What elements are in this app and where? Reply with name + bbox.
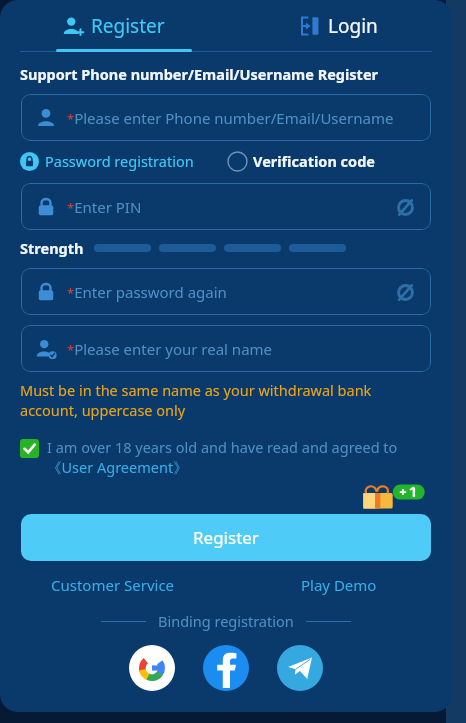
staticText: Strength [20, 238, 84, 258]
button[interactable]: *Enter password again [21, 268, 431, 315]
button[interactable]: Login [226, 0, 452, 52]
staticText: *Enter PIN [67, 197, 142, 217]
button[interactable]: *Please enter your real name [21, 325, 431, 372]
button[interactable]: Show password [393, 280, 417, 304]
staticText: Play Demo [301, 575, 377, 595]
button[interactable]: Password registration [20, 151, 194, 171]
button[interactable]: Sign in with Facebook [203, 645, 249, 691]
staticText: *Please enter your real name [67, 339, 273, 359]
staticText: Support Phone number/Email/Username Regi… [20, 64, 379, 84]
button[interactable]: *Please enter Phone number/Email/Usernam… [21, 94, 431, 141]
button[interactable]: Register [0, 0, 226, 52]
button[interactable]: I am over 18 years old and have read and… [20, 437, 428, 478]
button[interactable]: Register [21, 514, 431, 561]
staticText: Customer Service [51, 575, 175, 595]
staticText: Must be in the same name as your withdra… [20, 380, 428, 421]
staticText: I am over 18 years old and have read and… [47, 437, 428, 478]
staticText: Register [193, 526, 259, 549]
staticText: Register [91, 13, 165, 39]
staticText: *Please enter Phone number/Email/Usernam… [67, 108, 394, 128]
button[interactable]: Sign in with Telegram [277, 645, 323, 691]
staticText: Login [328, 13, 378, 39]
button[interactable]: Sign in with Google [129, 645, 175, 691]
staticText: Binding registration [158, 611, 294, 631]
staticText: Password registration [45, 151, 194, 171]
button[interactable]: Show password [393, 195, 417, 219]
button[interactable]: Play Demo [226, 575, 452, 595]
button[interactable]: Customer Service [0, 575, 226, 595]
button[interactable]: Verification code [228, 151, 375, 171]
button[interactable]: *Enter PIN [21, 183, 431, 230]
staticText: *Enter password again [67, 282, 227, 302]
staticText: Verification code [253, 151, 375, 171]
